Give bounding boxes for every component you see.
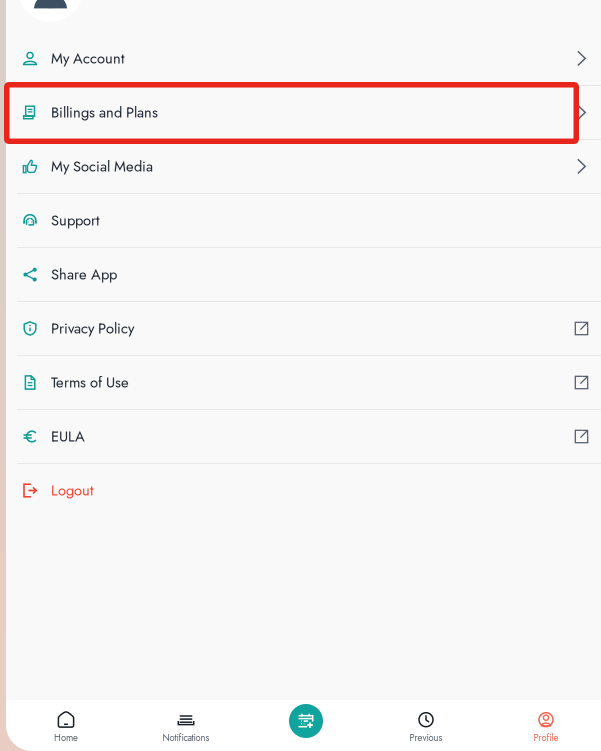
staticText: Logout — [51, 480, 94, 501]
button[interactable]: Privacy Policy — [6, 302, 601, 355]
staticText: Previous — [409, 731, 442, 744]
button[interactable]: Notifications — [126, 700, 246, 751]
staticText: Billings and Plans — [51, 102, 158, 123]
staticText: My Social Media — [51, 156, 153, 177]
button[interactable]: My Account — [6, 32, 601, 85]
button[interactable]: Home — [6, 700, 126, 751]
button[interactable]: Share App — [6, 248, 601, 301]
staticText: Home — [54, 731, 78, 744]
button[interactable]: Support — [6, 194, 601, 247]
staticText: Terms of Use — [51, 372, 129, 393]
button[interactable]: Terms of Use — [6, 356, 601, 409]
button[interactable]: My Social Media — [6, 140, 601, 193]
button[interactable]: Billings and Plans — [6, 86, 601, 139]
staticText: My Account — [51, 48, 125, 69]
staticText: Share App — [51, 264, 117, 285]
button[interactable]: Previous — [366, 700, 486, 751]
button[interactable]: New booking — [246, 700, 366, 751]
button[interactable]: EULA — [6, 410, 601, 463]
staticText: Privacy Policy — [51, 318, 134, 339]
button[interactable]: Profile — [486, 700, 601, 751]
staticText: Support — [51, 210, 100, 231]
staticText: Profile — [533, 731, 558, 744]
staticText: Notifications — [162, 731, 209, 744]
staticText: EULA — [51, 426, 85, 447]
button[interactable]: Logout — [6, 464, 601, 517]
